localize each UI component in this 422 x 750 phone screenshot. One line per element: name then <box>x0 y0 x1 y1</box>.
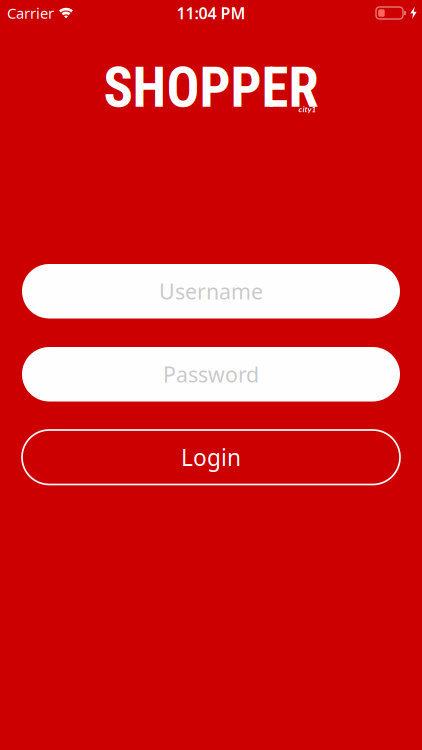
staticText: SHOPPER <box>103 56 318 120</box>
button[interactable]: Login <box>22 430 400 484</box>
button[interactable]: Password <box>22 347 400 401</box>
staticText: 11:04 PM <box>176 2 245 24</box>
staticText: city1 <box>298 104 316 114</box>
staticText: Username <box>159 277 263 305</box>
button[interactable]: Username <box>22 264 400 318</box>
staticText: Carrier <box>7 3 54 23</box>
staticText: Login <box>181 442 241 472</box>
staticText: Password <box>163 360 259 388</box>
